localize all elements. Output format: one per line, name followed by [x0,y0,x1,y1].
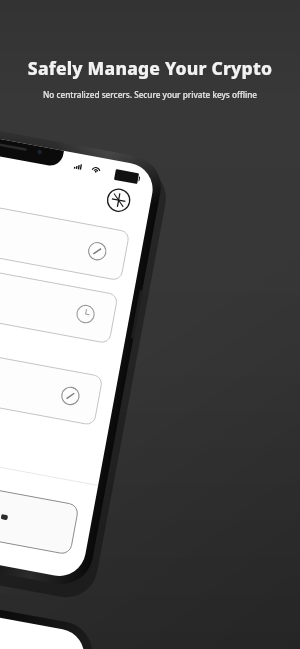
button[interactable]: Wallet app preview [0,0,300,649]
staticText: Safely Manage Your Crypto [0,56,300,80]
staticText: No centralized sercers. Secure your priv… [0,89,300,100]
